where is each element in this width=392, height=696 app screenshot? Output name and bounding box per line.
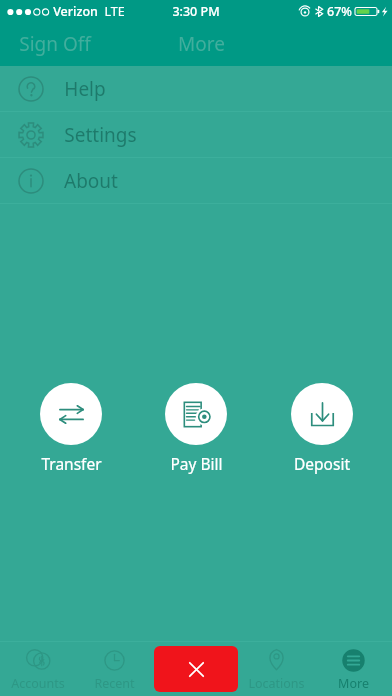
button[interactable]: Pay Bill [141,382,251,475]
button[interactable]: More [315,642,392,696]
staticText: Pay Bill [170,453,223,474]
staticText: Locations [248,675,305,692]
button[interactable]: Help [0,66,392,111]
staticText: 67% [327,3,352,20]
button[interactable]: Accounts [0,642,76,696]
button[interactable]: Locations [238,642,315,696]
staticText: Sign Off [19,31,91,57]
button[interactable]: About [0,158,392,203]
staticText: 3:30 PM [172,3,220,20]
staticText: Help [64,76,106,102]
staticText: More [338,675,369,692]
staticText: More [178,31,225,57]
button[interactable]: Deposit [267,382,377,475]
staticText: Accounts [11,675,65,692]
button[interactable]: Close menu [154,646,238,692]
staticText: Transfer [41,453,102,474]
staticText: About [64,168,118,194]
button[interactable]: Settings [0,112,392,157]
staticText: Recent [94,675,135,692]
staticText: LTE [104,3,125,20]
button[interactable]: Sign Off [0,23,105,65]
staticText: Verizon [53,3,98,20]
staticText: Settings [64,122,137,148]
staticText: Deposit [294,453,350,474]
button[interactable]: Recent [76,642,153,696]
button[interactable]: More [164,23,239,65]
button[interactable]: Transfer [16,382,126,475]
